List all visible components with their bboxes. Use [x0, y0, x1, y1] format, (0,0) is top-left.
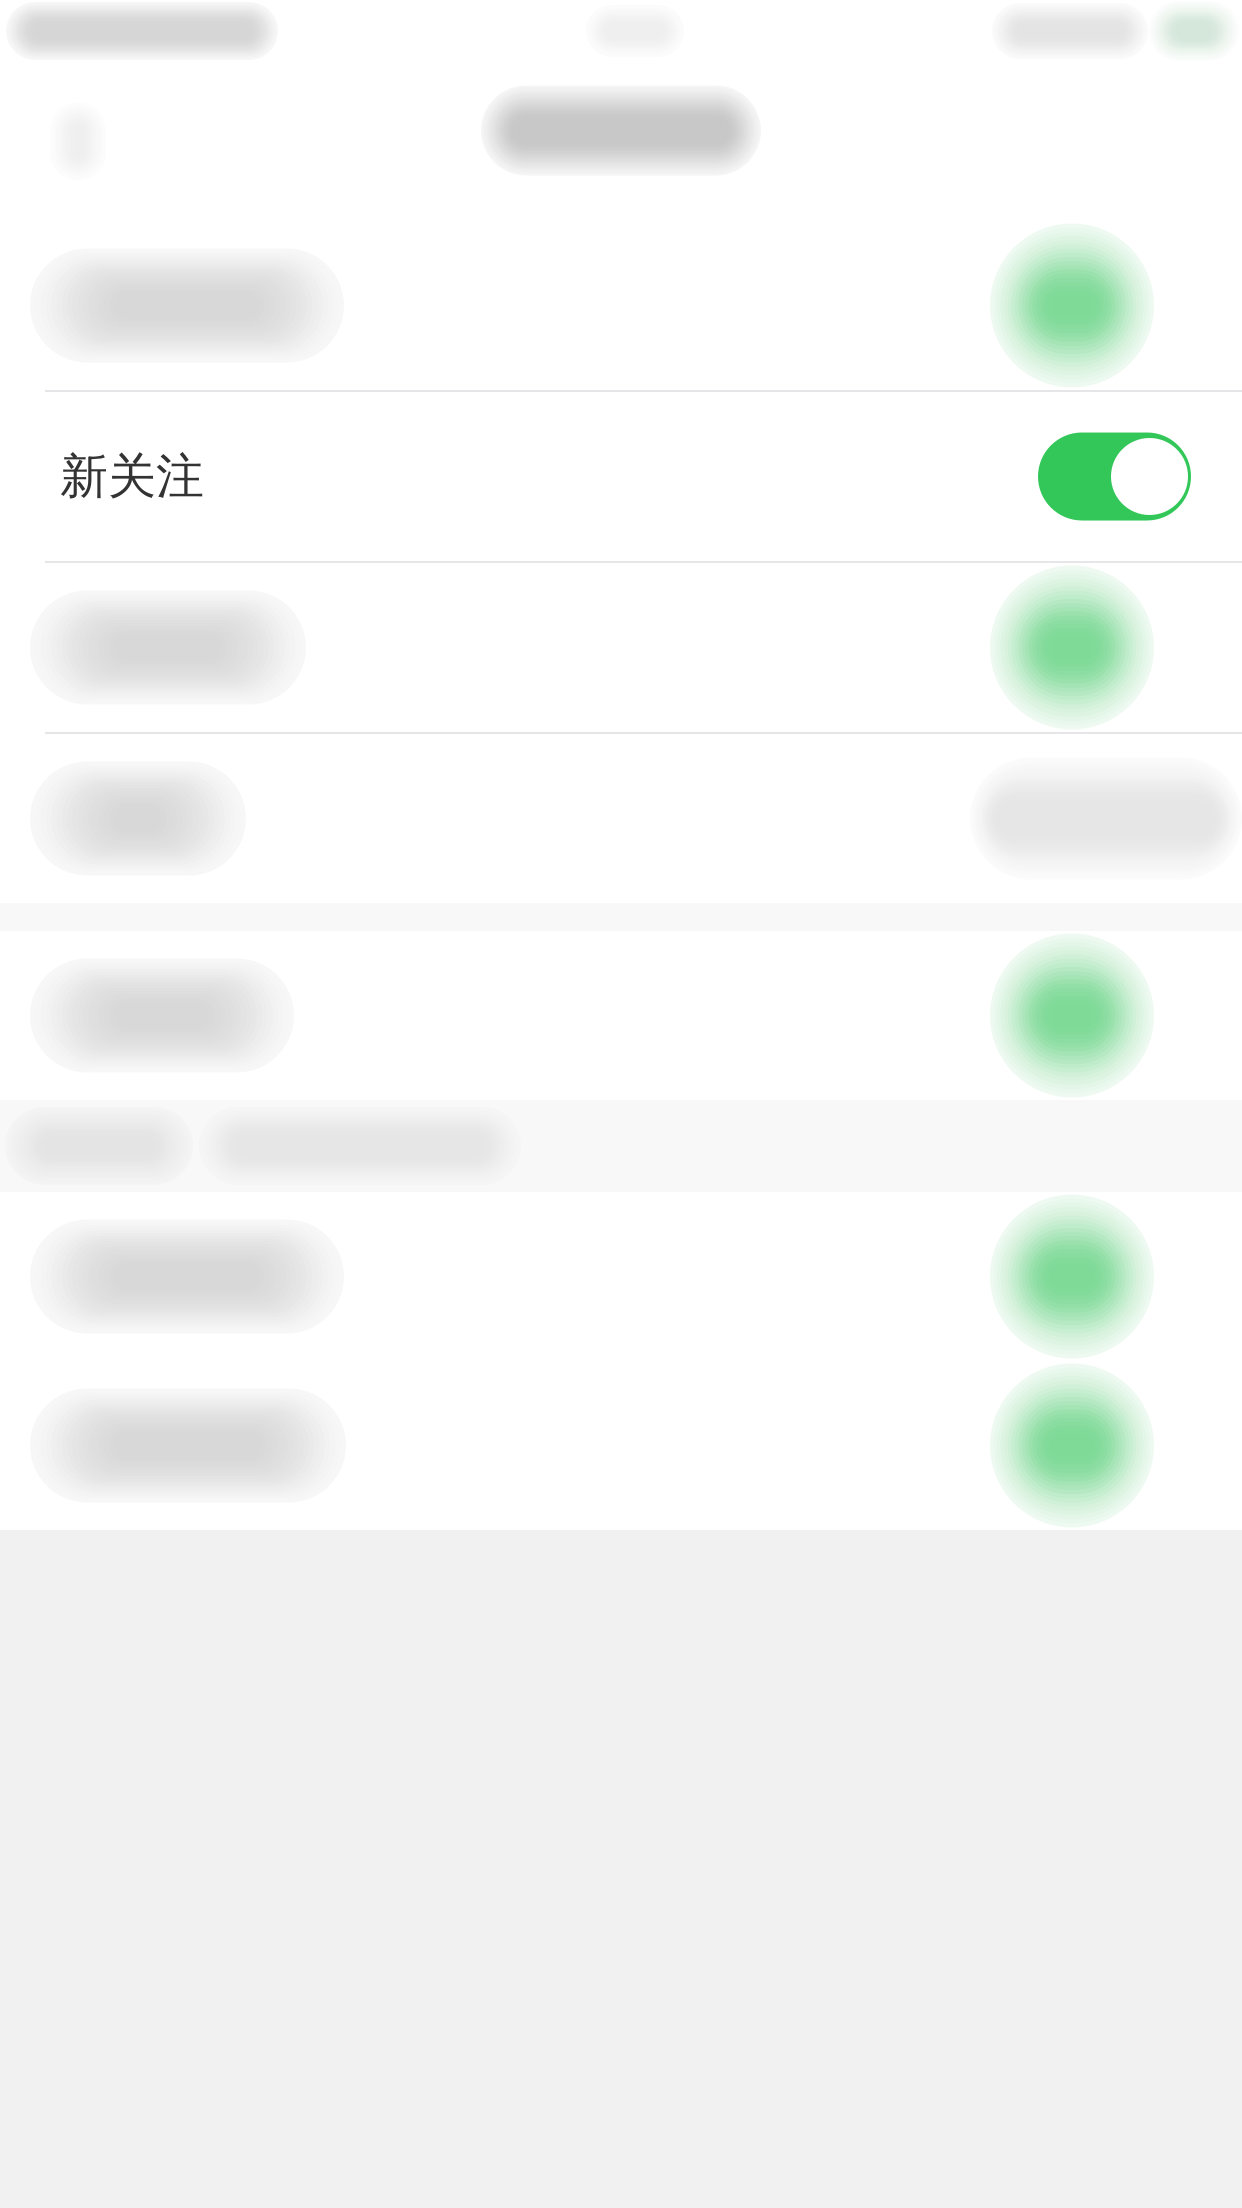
- button[interactable]: [0, 931, 1242, 1100]
- button[interactable]: [0, 563, 1242, 732]
- button[interactable]: [0, 1192, 1242, 1361]
- button[interactable]: [0, 1361, 1242, 1530]
- button[interactable]: Back: [18, 76, 138, 206]
- button[interactable]: 新关注: [0, 392, 1242, 561]
- staticText: 新关注: [60, 447, 204, 506]
- button[interactable]: [0, 734, 1242, 903]
- button[interactable]: [0, 221, 1242, 390]
